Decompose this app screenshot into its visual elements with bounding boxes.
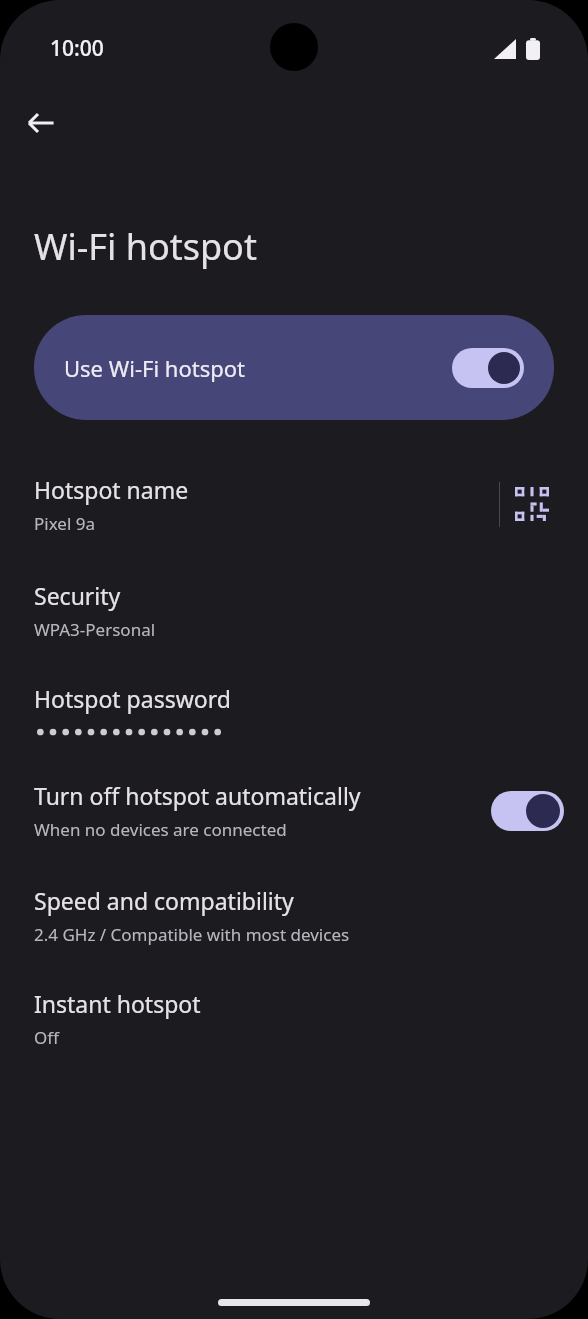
staticText: Hotspot password	[34, 683, 231, 714]
staticText: Pixel 9a	[34, 512, 95, 535]
button[interactable]: Instant hotspot	[0, 986, 588, 1051]
staticText: Use Wi-Fi hotspot	[64, 353, 452, 383]
button[interactable]: Turn off hotspot automatically	[0, 778, 588, 843]
button[interactable]: Speed and compatibility	[0, 883, 588, 948]
button[interactable]: Toggle	[491, 791, 564, 831]
staticText: Instant hotspot	[34, 988, 201, 1019]
button[interactable]: Security	[0, 578, 588, 643]
staticText: 10:00	[50, 34, 104, 63]
staticText: Security	[34, 580, 121, 611]
staticText: Hotspot name	[34, 474, 189, 505]
button[interactable]: Toggle	[452, 348, 524, 388]
button[interactable]: Hotspot password	[0, 681, 588, 742]
staticText: Speed and compatibility	[34, 885, 294, 916]
button[interactable]: Use Wi-Fi hotspot	[34, 315, 554, 420]
staticText: Off	[34, 1026, 59, 1049]
staticText: 2.4 GHz / Compatible with most devices	[34, 923, 350, 946]
staticText: Turn off hotspot automatically	[34, 780, 361, 811]
staticText: When no devices are connected	[34, 818, 287, 841]
staticText: WPA3-Personal	[34, 618, 156, 641]
staticText: Wi-Fi hotspot	[34, 222, 257, 271]
button[interactable]: Share hotspot QR code	[500, 472, 564, 536]
button[interactable]: Hotspot name	[0, 468, 588, 540]
button[interactable]: Back	[18, 100, 64, 146]
